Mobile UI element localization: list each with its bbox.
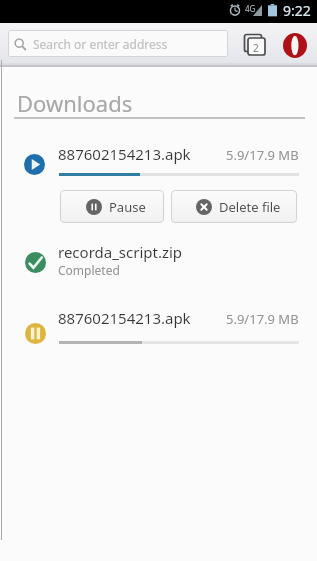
button[interactable]: Download status (25, 323, 46, 344)
button[interactable]: Tabs (242, 32, 266, 56)
staticText: 5.9/17.9 MB (226, 146, 299, 164)
staticText: 887602154213.apk (58, 308, 191, 328)
button[interactable]: Search or enter address (8, 30, 228, 57)
button[interactable]: Download status (24, 154, 45, 175)
staticText: 4G (245, 3, 256, 14)
staticText: Downloads (17, 88, 133, 118)
button[interactable]: Pause (60, 190, 164, 223)
staticText: 5.9/17.9 MB (226, 310, 299, 328)
staticText: 887602154213.apk (58, 144, 191, 164)
staticText: Delete file (219, 198, 281, 216)
staticText: recorda_script.zip (58, 242, 183, 262)
staticText: Pause (109, 198, 146, 216)
button[interactable]: Opera menu (283, 33, 307, 58)
button[interactable]: Delete file (171, 190, 297, 223)
staticText: Search or enter address (33, 36, 168, 52)
button[interactable]: Download status (25, 252, 46, 273)
staticText: 2 (253, 41, 259, 55)
staticText: 9:22 (283, 1, 311, 20)
staticText: Completed (58, 262, 120, 278)
